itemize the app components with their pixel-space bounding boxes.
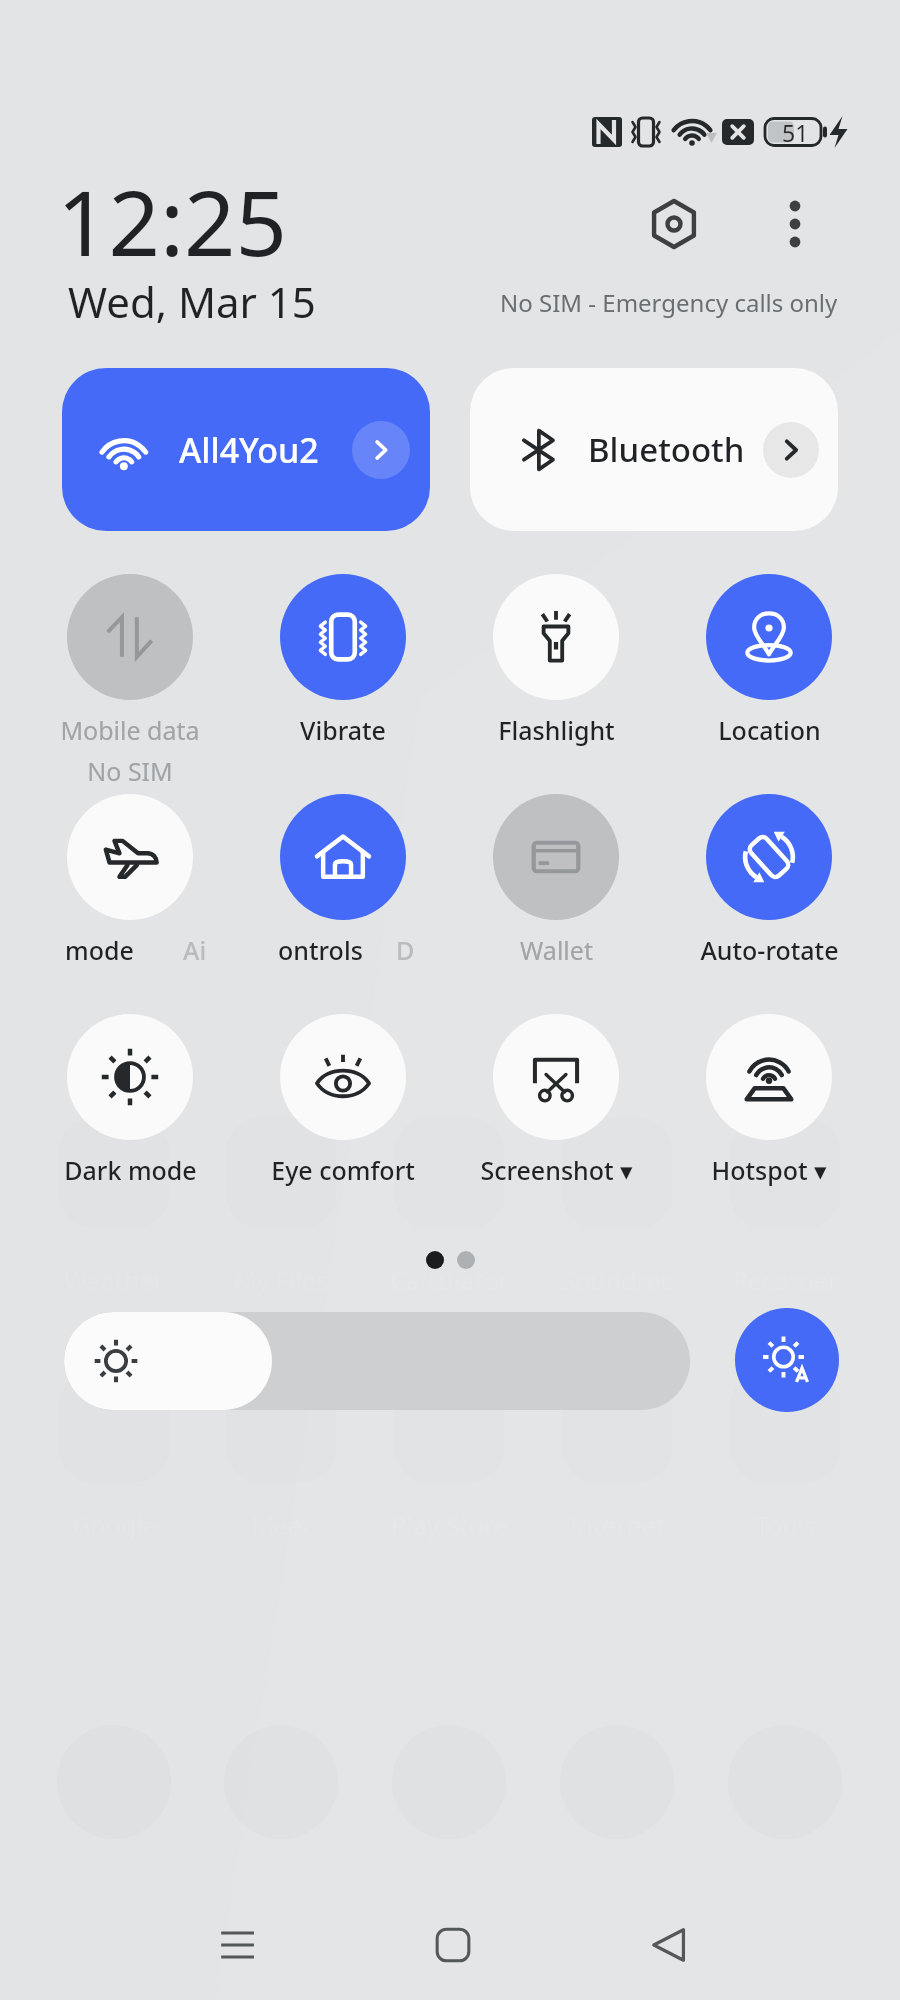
staticText: Mobile data [60,713,200,747]
staticText: No SIM [87,754,173,788]
button[interactable]: Eye comfort [280,1014,406,1140]
staticText: D [396,933,415,967]
staticText: Location [718,713,821,747]
staticText: Hotspot ▾ [711,1153,827,1187]
button[interactable]: Settings [637,187,711,261]
button[interactable]: Screenshot [493,1014,619,1140]
button[interactable]: Location [706,574,832,700]
button[interactable]: Hotspot [706,1014,832,1140]
button[interactable]: Auto-rotate [706,794,832,920]
staticText: Vibrate [300,713,386,747]
button[interactable]: Dark mode [67,1014,193,1140]
staticText: Wed, Mar 15 [68,273,316,330]
button[interactable]: Bluetooth [470,368,838,531]
staticText: Bluetooth [588,427,745,472]
staticText: ontrols [278,933,363,967]
button[interactable]: All4You2 [62,368,430,531]
staticText: Eye comfort [271,1153,415,1187]
staticText: Screenshot ▾ [480,1153,633,1187]
button[interactable]: Mobile data [67,574,193,700]
button[interactable]: Flashlight [493,574,619,700]
staticText: 51 [782,117,809,148]
staticText: Auto-rotate [700,933,839,967]
button[interactable]: Vibrate [280,574,406,700]
button[interactable]: Back [609,1885,729,2000]
staticText: Calculator [390,1263,509,1297]
staticText: No SIM - Emergency calls only [500,286,838,319]
staticText: Dark mode [64,1153,197,1187]
staticText: All4You2 [179,427,319,473]
button[interactable]: Wallet [493,794,619,920]
staticText: mode [65,933,134,967]
staticText: 12:25 [57,160,288,283]
button[interactable]: More options [758,187,832,261]
staticText: Wallet [520,933,593,967]
button[interactable]: Airplane mode [67,794,193,920]
staticText: Ai [183,933,207,967]
button[interactable]: Brightness [64,1312,690,1410]
staticText: Flashlight [498,713,615,747]
button[interactable]: Home [393,1885,513,2000]
button[interactable]: Auto brightness [735,1308,839,1412]
button[interactable]: Device controls [280,794,406,920]
button[interactable]: Recents [178,1885,298,2000]
